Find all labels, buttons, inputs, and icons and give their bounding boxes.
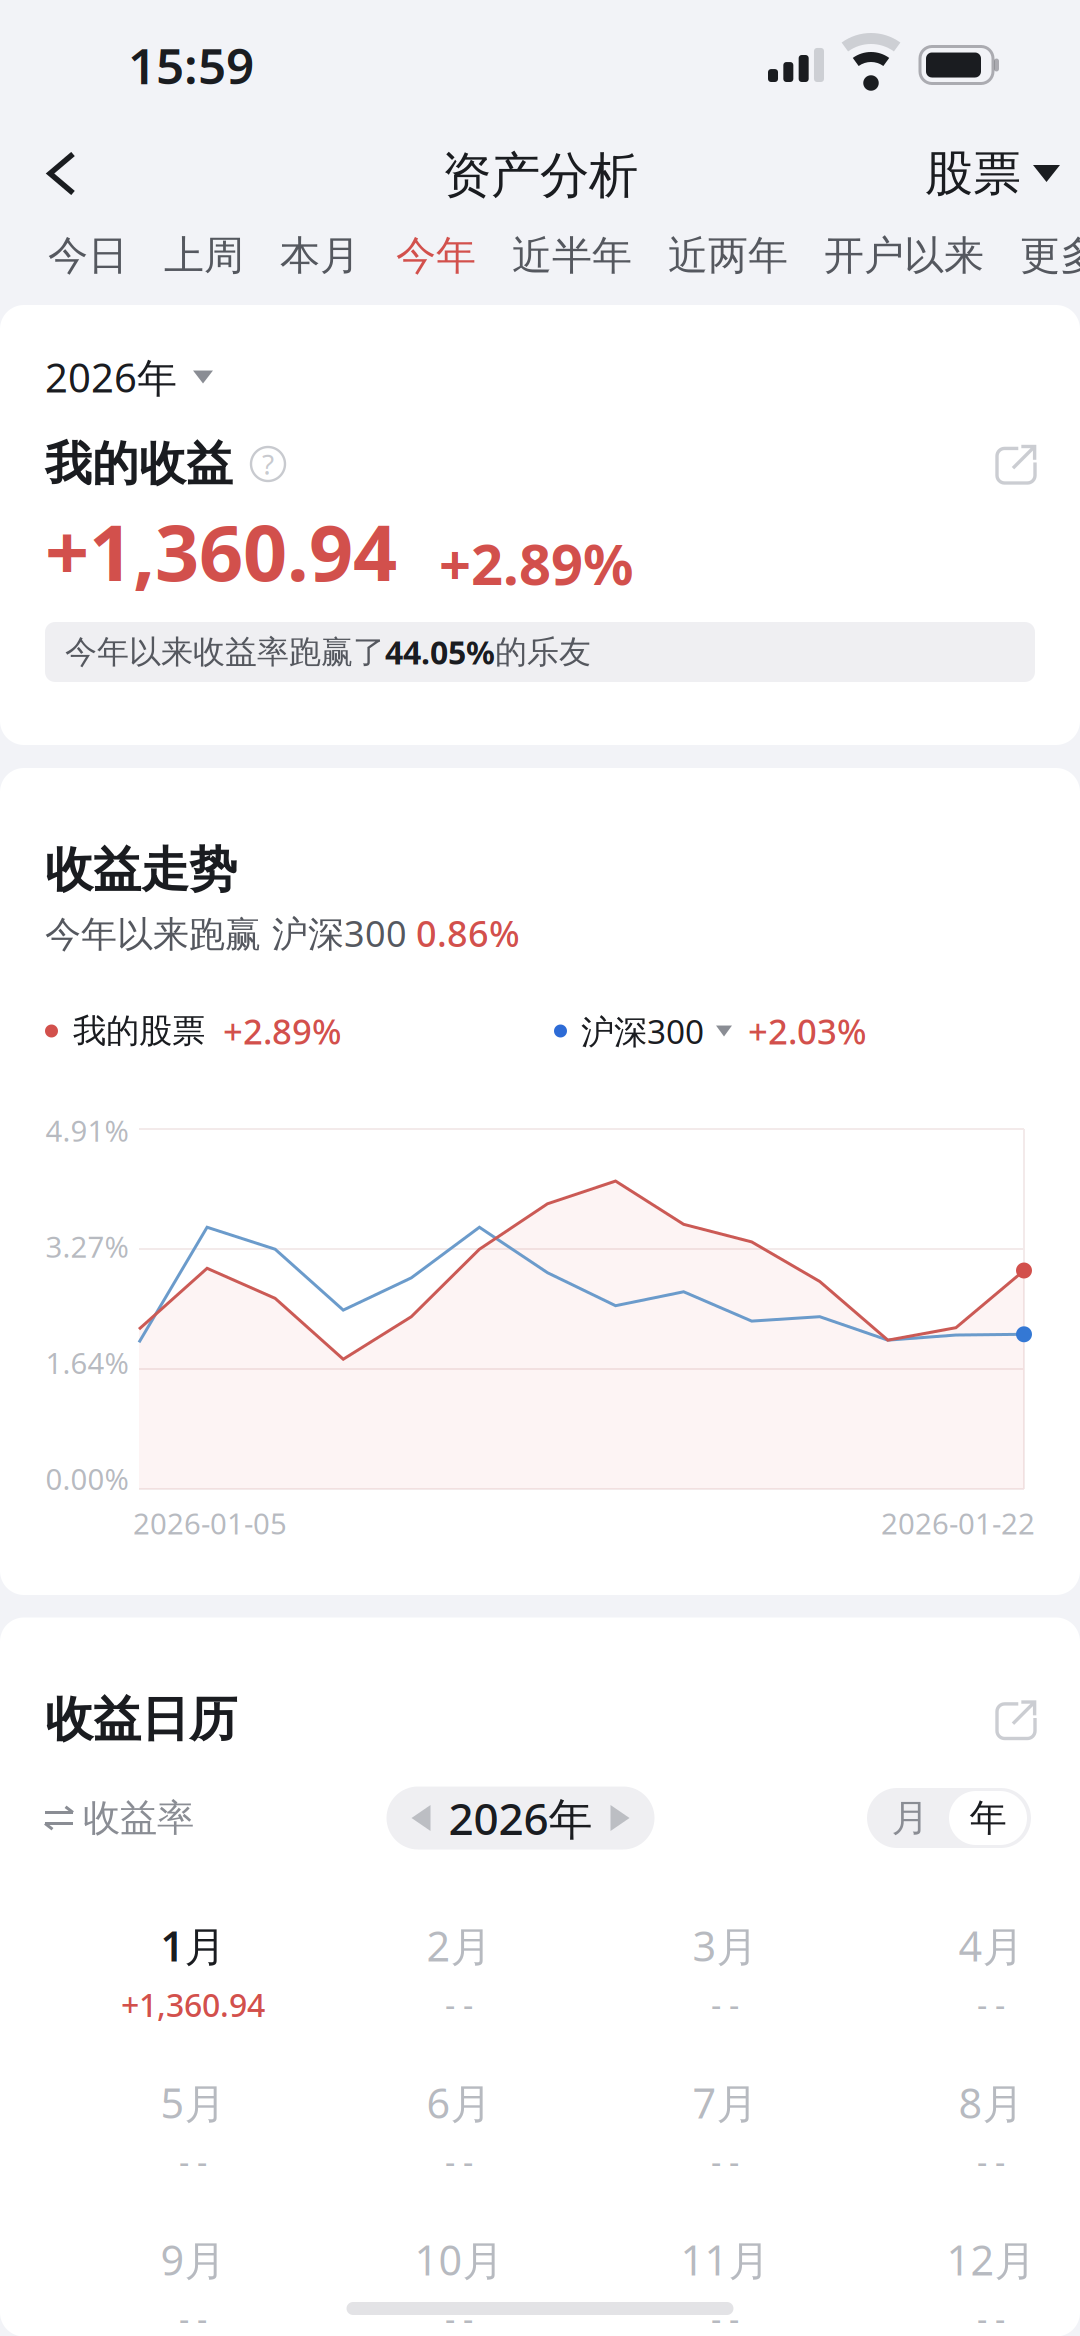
button[interactable]: 3月 [592,1924,858,2022]
button[interactable]: 4月 [858,1924,1080,2022]
staticText: 2月 [426,1918,491,1973]
staticText: - - [445,1983,473,2026]
button[interactable]: Back [8,128,113,219]
staticText: 本月 [280,231,360,280]
staticText: 6月 [426,2075,491,2130]
button[interactable]: 月 [871,1791,949,1845]
staticText: 10月 [414,2232,503,2287]
staticText: - - [977,2297,1005,2336]
staticText: 5月 [160,2075,225,2130]
staticText: 12月 [946,2232,1035,2287]
staticText: +1,360.94 [45,500,397,602]
staticText: 我的股票 [73,1010,205,1051]
staticText: 年 [969,1795,1006,1841]
staticText: 9月 [160,2232,225,2287]
button[interactable]: 12月 [858,2238,1080,2336]
staticText: 近半年 [512,231,632,280]
staticText: 44.05% [385,631,495,673]
button[interactable]: Expand calendar [989,1692,1035,1746]
button[interactable]: 近两年 [650,226,806,308]
staticText: 的乐友 [495,632,591,672]
staticText: 沪深300 [581,1009,704,1053]
staticText: 收益走势 [45,840,237,899]
staticText: 0.86% [416,909,520,957]
staticText: 收益日历 [45,1690,237,1749]
button[interactable]: 7月 [592,2081,858,2179]
button[interactable]: 1月 [60,1924,326,2022]
staticText: - - [445,2140,473,2183]
staticText: 11月 [680,2232,769,2287]
staticText: - - [977,2140,1005,2183]
staticText: 1.64% [45,1343,128,1382]
staticText: - - [179,2140,207,2183]
button[interactable]: Expand [989,437,1035,491]
button[interactable]: 5月 [60,2081,326,2179]
button[interactable]: 收益率 [45,1787,194,1849]
staticText: 今年以来收益率跑赢了 [65,632,385,672]
staticText: 2026年 [45,350,177,403]
staticText: 2026-01-05 [133,1503,287,1542]
staticText: 7月 [692,2075,757,2130]
staticText: 1月 [160,1918,225,1973]
button[interactable]: 今日 [30,226,146,308]
staticText: 月 [891,1795,928,1841]
staticText: 2026年 [448,1789,592,1847]
staticText: 4.91% [45,1111,128,1150]
staticText: 上周 [164,231,244,280]
button[interactable]: 6月 [326,2081,592,2179]
staticText: 0.00% [45,1459,128,1498]
staticText: 8月 [958,2075,1023,2130]
button[interactable]: 上周 [146,226,262,308]
staticText: 4月 [958,1918,1023,1973]
staticText: - - [445,2297,473,2336]
staticText: - - [711,2297,739,2336]
staticText: ? [262,445,274,483]
staticText: 更多 [1020,231,1080,280]
staticText: 收益率 [83,1795,194,1841]
staticText: 股票 [925,144,1021,203]
button[interactable]: 近半年 [494,226,650,308]
button[interactable]: 开户以来 [806,226,1002,308]
staticText: 资产分析 [442,145,638,206]
button[interactable]: 9月 [60,2238,326,2336]
button[interactable]: 8月 [858,2081,1080,2179]
staticText: +2.03% [748,1008,867,1054]
staticText: - - [179,2297,207,2336]
button[interactable]: 本月 [262,226,378,308]
button[interactable]: 2026年 [45,355,213,399]
staticText: +2.89% [223,1008,342,1054]
button[interactable]: 股票 [901,120,1072,227]
staticText: - - [977,1983,1005,2026]
staticText: +2.89% [439,526,634,600]
staticText: 今日 [48,231,128,280]
button[interactable]: 10月 [326,2238,592,2336]
button[interactable]: 更多 [1002,226,1080,308]
staticText: 开户以来 [824,231,984,280]
staticText: 15:59 [128,32,254,98]
staticText: 3.27% [45,1227,128,1266]
staticText: - - [711,1983,739,2026]
staticText: 2026-01-22 [881,1503,1035,1542]
button[interactable]: 11月 [592,2238,858,2336]
staticText: 我的收益 [45,435,233,493]
staticText: 3月 [692,1918,757,1973]
button[interactable]: Next year [600,1805,639,1831]
button[interactable]: Previous year [401,1805,440,1831]
button[interactable]: 2月 [326,1924,592,2022]
staticText: 今年 [396,231,476,280]
staticText: - - [711,2140,739,2183]
staticText: +1,360.94 [121,1983,265,2026]
button[interactable]: 今年 [378,226,494,308]
button[interactable]: 年 [949,1791,1027,1845]
staticText: 近两年 [668,231,788,280]
staticText: 今年以来跑赢 沪深300 [45,909,416,957]
